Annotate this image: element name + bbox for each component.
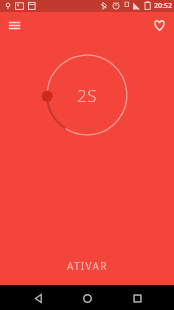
button[interactable]: Timer duration 2 seconds — [39, 47, 135, 143]
staticText: 2S — [77, 84, 97, 107]
staticText: 20:52 — [154, 1, 172, 11]
button[interactable]: Back — [26, 286, 50, 310]
button[interactable]: Open navigation menu — [3, 14, 25, 36]
button[interactable]: Favorite — [148, 14, 170, 36]
button[interactable]: ATIVAR — [49, 254, 126, 278]
button[interactable]: Recent apps — [125, 286, 149, 310]
button[interactable]: Home — [75, 286, 99, 310]
staticText: ATIVAR — [67, 259, 108, 273]
